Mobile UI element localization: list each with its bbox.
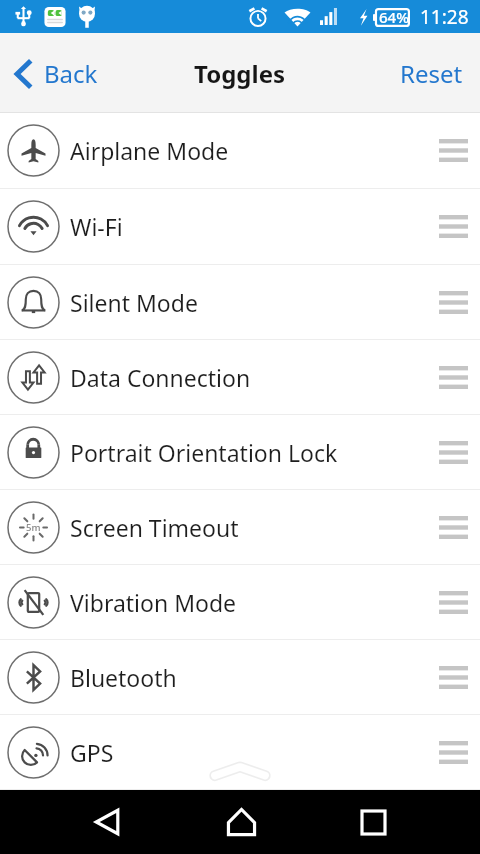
other: Reorder	[439, 666, 468, 689]
staticText: Screen Timeout	[70, 512, 239, 543]
staticText: Portrait Orientation Lock	[70, 437, 338, 468]
staticText: Bluetooth	[70, 662, 177, 693]
button[interactable]: Recents	[328, 790, 418, 854]
other: Reorder	[439, 291, 468, 314]
staticText: 5m	[26, 521, 41, 534]
staticText: Vibration Mode	[70, 587, 237, 618]
button[interactable]: Silent Mode	[0, 265, 480, 339]
staticText: GPS	[70, 737, 114, 768]
button[interactable]: Portrait Orientation Lock	[0, 415, 480, 489]
button[interactable]: Home	[196, 790, 286, 854]
other: Reorder	[439, 516, 468, 539]
button[interactable]: Back	[0, 49, 110, 98]
other: Reorder	[439, 591, 468, 614]
button[interactable]: Back	[62, 790, 152, 854]
staticText: Silent Mode	[70, 287, 198, 318]
staticText: Reset	[400, 57, 463, 90]
button[interactable]: Wi-Fi	[0, 189, 480, 264]
staticText: 11:28	[420, 4, 469, 30]
other: Reorder	[439, 741, 468, 764]
button[interactable]: Bluetooth	[0, 640, 480, 714]
staticText: Back	[44, 57, 98, 90]
button[interactable]: Airplane Mode	[0, 113, 480, 188]
button[interactable]: Data Connection	[0, 340, 480, 414]
button[interactable]: Reset	[383, 47, 480, 100]
staticText: 64%	[379, 7, 409, 27]
other: Reorder	[439, 215, 468, 238]
staticText: Data Connection	[70, 362, 251, 393]
staticText: Airplane Mode	[70, 135, 229, 166]
other: Reorder	[439, 366, 468, 389]
button[interactable]: 5m	[0, 490, 480, 564]
other: Reorder	[439, 441, 468, 464]
button[interactable]: GPS	[0, 715, 480, 789]
staticText: Wi-Fi	[70, 211, 123, 242]
button[interactable]: Vibration Mode	[0, 565, 480, 639]
other: Reorder	[439, 139, 468, 162]
staticText: Toggles	[194, 57, 286, 90]
